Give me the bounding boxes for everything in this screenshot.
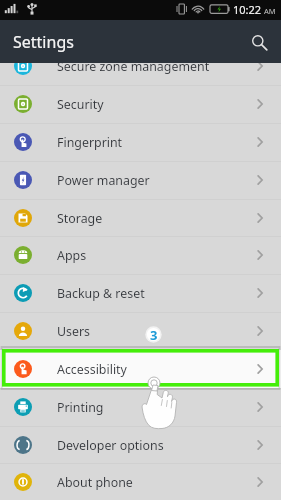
button[interactable]: Secure zone management: [0, 63, 281, 85]
button[interactable]: Accessibility: [0, 350, 281, 388]
button[interactable]: About phone: [0, 463, 281, 500]
staticText: AM: [262, 6, 276, 16]
button[interactable]: Storage: [0, 199, 281, 237]
staticText: Fingerprint: [57, 134, 123, 151]
button[interactable]: Security: [0, 85, 281, 123]
button[interactable]: Power manager: [0, 161, 281, 199]
staticText: 3: [150, 326, 158, 343]
staticText: Printing: [57, 399, 104, 416]
staticText: Power manager: [57, 172, 150, 189]
button[interactable]: Search: [245, 28, 273, 56]
staticText: Apps: [57, 247, 87, 264]
staticText: Backup & reset: [57, 285, 145, 302]
button[interactable]: Printing: [0, 388, 281, 426]
staticText: 10:22: [233, 2, 262, 17]
staticText: Settings: [13, 31, 74, 53]
button[interactable]: Fingerprint: [0, 123, 281, 161]
button[interactable]: Backup & reset: [0, 274, 281, 312]
staticText: Users: [57, 323, 91, 340]
staticText: Storage: [57, 210, 103, 227]
staticText: Secure zone management: [57, 63, 210, 75]
staticText: Developer options: [57, 437, 164, 454]
button[interactable]: Developer options: [0, 426, 281, 464]
button[interactable]: Apps: [0, 236, 281, 274]
staticText: About phone: [57, 474, 133, 491]
button[interactable]: Users: [0, 312, 281, 350]
staticText: Security: [57, 96, 104, 113]
staticText: Accessibility: [57, 361, 127, 378]
